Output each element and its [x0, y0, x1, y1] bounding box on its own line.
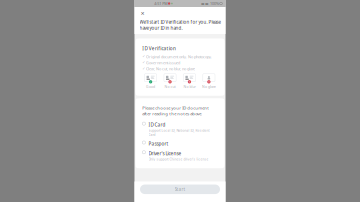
- staticText: ✕: [169, 80, 171, 83]
- staticText: We'll start ID Verification for you. Ple…: [139, 19, 220, 31]
- button[interactable]: Close: [139, 11, 145, 15]
- staticText: ▬▬ 100%: [201, 1, 219, 6]
- button[interactable]: Passport: [142, 140, 218, 147]
- button[interactable]: Start: [140, 185, 220, 194]
- staticText: 4:51 PM: [154, 1, 167, 6]
- staticText: No cut: [164, 84, 175, 89]
- staticText: Support Local ID, National ID, Resident …: [148, 128, 209, 137]
- staticText: ✓: [142, 66, 145, 70]
- staticText: No blur: [183, 84, 195, 89]
- staticText: Good: [146, 84, 155, 89]
- staticText: Original document only. No photocopy.: [146, 54, 212, 59]
- staticText: ✓: [142, 54, 145, 58]
- staticText: Driver's License: [148, 150, 181, 157]
- staticText: Only support Chinese driver's license: [148, 157, 208, 161]
- staticText: ✓: [142, 60, 145, 64]
- staticText: ✕: [208, 80, 210, 83]
- staticText: No glare: [202, 84, 216, 89]
- staticText: Start: [174, 186, 185, 192]
- staticText: ✓: [150, 80, 152, 83]
- staticText: ✕: [188, 80, 190, 83]
- staticText: ✕: [140, 11, 144, 16]
- staticText: Clear, No cut, no blur, no glare: [146, 66, 195, 71]
- staticText: ID Card: [148, 121, 165, 128]
- staticText: Please choose your ID document after rea…: [142, 105, 209, 116]
- button[interactable]: ID Card: [142, 121, 218, 137]
- button[interactable]: Driver's License: [142, 150, 218, 161]
- staticText: Passport: [148, 140, 168, 147]
- staticText: ID Verification: [142, 45, 176, 52]
- staticText: Government-issued: [146, 60, 180, 65]
